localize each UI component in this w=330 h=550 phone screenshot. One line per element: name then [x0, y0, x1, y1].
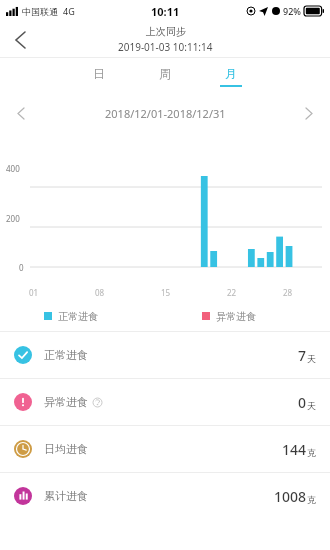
- staticText: 01: [29, 287, 39, 298]
- button[interactable]: 正常进食: [0, 332, 330, 378]
- staticText: 144: [282, 440, 307, 459]
- staticText: 400: [6, 163, 20, 174]
- staticText: 22: [227, 287, 237, 298]
- staticText: 4G: [63, 5, 75, 17]
- button[interactable]: Back: [0, 22, 40, 57]
- staticText: 0: [19, 262, 24, 273]
- staticText: 异常进食: [44, 395, 88, 409]
- button[interactable]: 周: [148, 58, 182, 94]
- staticText: 2018/12/01-2018/12/31: [105, 106, 226, 121]
- staticText: 克: [307, 494, 316, 505]
- staticText: 上次同步: [146, 25, 186, 38]
- button[interactable]: Next period: [294, 98, 324, 128]
- staticText: 周: [159, 66, 171, 81]
- staticText: 92%: [283, 5, 301, 17]
- staticText: 正常进食: [58, 310, 98, 323]
- button[interactable]: 月: [214, 58, 248, 94]
- button[interactable]: 异常进食: [0, 379, 330, 425]
- staticText: 10:11: [151, 4, 180, 19]
- staticText: 2019-01-03 10:11:14: [118, 40, 213, 54]
- staticText: 克: [307, 447, 316, 458]
- staticText: 正常进食: [44, 348, 88, 362]
- staticText: 15: [161, 287, 171, 298]
- staticText: 累计进食: [44, 489, 88, 503]
- button[interactable]: Previous period: [6, 98, 36, 128]
- staticText: 日均进食: [44, 442, 88, 456]
- staticText: 中国联通: [22, 6, 58, 17]
- staticText: 0: [298, 393, 307, 412]
- staticText: 天: [307, 400, 316, 411]
- staticText: 异常进食: [216, 310, 256, 323]
- staticText: 月: [225, 66, 237, 81]
- staticText: 200: [6, 213, 20, 224]
- staticText: 08: [95, 287, 105, 298]
- button[interactable]: 累计进食: [0, 473, 330, 519]
- staticText: 日: [93, 66, 105, 81]
- staticText: 7: [298, 346, 307, 365]
- staticText: 天: [307, 353, 316, 364]
- button[interactable]: 日: [82, 58, 116, 94]
- button[interactable]: 日均进食: [0, 426, 330, 472]
- staticText: 28: [283, 287, 293, 298]
- staticText: 1008: [274, 487, 307, 506]
